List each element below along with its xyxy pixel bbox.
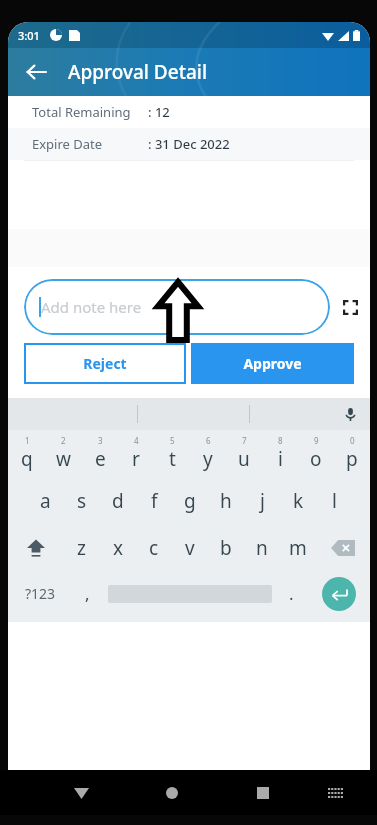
button[interactable]: Enter xyxy=(307,571,370,616)
staticText: v xyxy=(185,535,195,561)
button[interactable]: 9 xyxy=(298,430,334,477)
button[interactable]: Back xyxy=(64,776,98,810)
button[interactable]: m xyxy=(280,524,316,571)
button[interactable]: s xyxy=(64,477,100,524)
staticText: Add note here xyxy=(41,297,142,317)
staticText: Reject xyxy=(83,354,127,373)
staticText: . xyxy=(289,582,294,605)
staticText: Approve xyxy=(243,354,302,373)
staticText: 7 xyxy=(242,435,247,446)
staticText: 6 xyxy=(206,435,211,446)
staticText: l xyxy=(332,488,337,514)
staticText: p xyxy=(346,446,358,472)
button[interactable]: Total Remaining xyxy=(8,96,370,128)
staticText: b xyxy=(220,535,232,561)
button[interactable]: Approve xyxy=(191,343,354,384)
button[interactable]: 7 xyxy=(226,430,262,477)
staticText: u xyxy=(238,446,250,472)
staticText: r xyxy=(132,446,140,472)
staticText: 3 xyxy=(98,435,103,446)
button[interactable]: Expand xyxy=(330,279,370,335)
staticText: e xyxy=(95,446,106,472)
staticText: 2 xyxy=(61,435,66,446)
staticText: 3:01 xyxy=(18,28,40,43)
button[interactable]: Keyboard switcher xyxy=(321,778,351,808)
button[interactable]: f xyxy=(136,477,172,524)
staticText: m xyxy=(289,535,307,561)
button[interactable]: Voice input xyxy=(338,402,362,426)
staticText: a xyxy=(40,488,51,514)
staticText: w xyxy=(56,446,71,472)
button[interactable]: 5 xyxy=(154,430,190,477)
button[interactable]: Back xyxy=(8,48,370,96)
staticText: f xyxy=(151,488,158,514)
button[interactable]: . xyxy=(276,571,307,616)
button[interactable]: 3 xyxy=(82,430,118,477)
staticText: c xyxy=(149,535,159,561)
staticText: 5 xyxy=(170,435,175,446)
button[interactable]: j xyxy=(244,477,280,524)
button[interactable]: 2 xyxy=(45,430,82,477)
staticText: j xyxy=(260,488,265,514)
staticText: : 31 Dec 2022 xyxy=(148,135,230,153)
staticText: Approval Detail xyxy=(68,59,208,85)
button[interactable]: ?123 xyxy=(8,571,72,616)
staticText: , xyxy=(85,582,90,605)
button[interactable]: l xyxy=(316,477,352,524)
staticText: q xyxy=(21,446,33,472)
button[interactable]: 1 xyxy=(8,430,45,477)
button[interactable]: 0 xyxy=(334,430,370,477)
button[interactable]: Reject xyxy=(24,343,186,384)
button[interactable]: z xyxy=(63,524,100,571)
button[interactable]: b xyxy=(208,524,244,571)
button[interactable]: 4 xyxy=(118,430,154,477)
staticText: x xyxy=(113,535,124,561)
staticText: 4 xyxy=(134,435,139,446)
staticText: g xyxy=(184,488,196,514)
button[interactable]: 8 xyxy=(262,430,298,477)
button[interactable] xyxy=(103,571,276,616)
button[interactable]: g xyxy=(172,477,208,524)
staticText: d xyxy=(112,488,124,514)
staticText: t xyxy=(169,446,176,472)
staticText: 0 xyxy=(350,435,355,446)
staticText: : 12 xyxy=(148,103,170,121)
staticText: Expire Date xyxy=(32,135,103,153)
button[interactable]: Shift xyxy=(8,524,63,571)
button[interactable]: v xyxy=(172,524,208,571)
staticText: h xyxy=(220,488,232,514)
button[interactable]: 6 xyxy=(190,430,226,477)
staticText: z xyxy=(77,535,86,561)
button[interactable]: d xyxy=(100,477,136,524)
staticText: y xyxy=(203,446,213,472)
button[interactable]: Add note here xyxy=(24,279,330,335)
button[interactable]: , xyxy=(72,571,103,616)
button[interactable]: Back xyxy=(16,52,56,92)
staticText: 1 xyxy=(25,435,30,446)
staticText: o xyxy=(310,446,322,472)
button[interactable]: Home xyxy=(155,776,189,810)
staticText: k xyxy=(293,488,304,514)
staticText: 8 xyxy=(278,435,283,446)
staticText: i xyxy=(278,446,283,472)
button[interactable]: k xyxy=(280,477,316,524)
staticText: n xyxy=(256,535,268,561)
button[interactable]: Backspace xyxy=(316,524,370,571)
button[interactable]: Expire Date xyxy=(8,128,370,160)
button[interactable]: c xyxy=(136,524,172,571)
staticText: Total Remaining xyxy=(32,103,131,121)
staticText: 9 xyxy=(314,435,319,446)
staticText: ?123 xyxy=(25,584,56,603)
button[interactable]: h xyxy=(208,477,244,524)
button[interactable]: a xyxy=(27,477,64,524)
staticText: s xyxy=(77,488,87,514)
button[interactable]: Recents xyxy=(246,776,280,810)
button[interactable]: x xyxy=(100,524,136,571)
button[interactable]: n xyxy=(244,524,280,571)
